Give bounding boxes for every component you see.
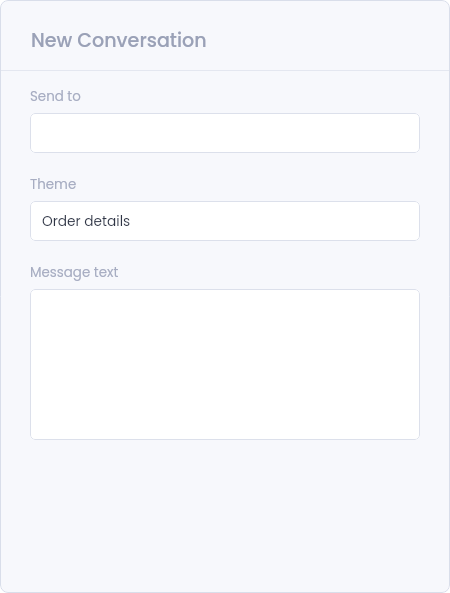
button[interactable]: Send to field	[30, 113, 420, 153]
button[interactable]: Message text field	[30, 289, 420, 440]
staticText: New Conversation	[31, 27, 207, 54]
staticText: Order details	[42, 212, 131, 231]
staticText: Send to	[30, 87, 81, 106]
staticText: Message text	[30, 263, 119, 282]
button[interactable]: Theme field	[30, 201, 420, 241]
staticText: Theme	[30, 175, 77, 194]
